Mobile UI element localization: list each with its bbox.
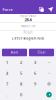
staticText: Newton (N)	[20, 24, 35, 28]
button[interactable]: 0	[14, 89, 28, 100]
staticText: .	[6, 92, 7, 97]
staticText: Force	[2, 7, 12, 12]
staticText: 1	[6, 60, 8, 65]
staticText: 5	[20, 70, 22, 76]
button[interactable]: Minus	[42, 57, 56, 68]
button[interactable]: 7	[0, 78, 14, 89]
button[interactable]: 9	[28, 78, 42, 89]
button[interactable]: 8	[14, 78, 28, 89]
button[interactable]: Convert	[42, 89, 56, 100]
button[interactable]: 3	[28, 57, 42, 68]
staticText: 2	[20, 60, 22, 65]
staticText: Input Value	[19, 14, 36, 18]
button[interactable]: 1	[0, 57, 14, 68]
button[interactable]: Share	[2, 49, 27, 56]
button[interactable]: 6	[28, 68, 42, 79]
button[interactable]: Clear	[29, 49, 54, 56]
staticText: 3	[34, 60, 36, 65]
button[interactable]: Minus	[42, 68, 56, 79]
button[interactable]: Delete	[42, 78, 56, 89]
button[interactable]: Newton (N)	[0, 22, 56, 30]
button[interactable]: 4	[0, 68, 14, 79]
staticText: 8	[20, 81, 22, 86]
button[interactable]: 2	[14, 57, 28, 68]
staticText: Clear	[37, 51, 45, 54]
staticText: 6	[34, 70, 36, 76]
button[interactable]: Send	[47, 6, 53, 12]
staticText: 9	[34, 81, 36, 86]
button[interactable]: Copy	[38, 6, 44, 12]
staticText: 0	[20, 92, 22, 97]
staticText: Result	[23, 31, 32, 34]
button[interactable]: 5	[14, 68, 28, 79]
staticText: 2.8959 kilogram-force	[11, 37, 44, 40]
staticText: 7	[6, 81, 8, 86]
staticText: Share	[10, 51, 18, 54]
staticText: 4	[6, 70, 8, 76]
staticText: 28.4	[24, 17, 31, 22]
